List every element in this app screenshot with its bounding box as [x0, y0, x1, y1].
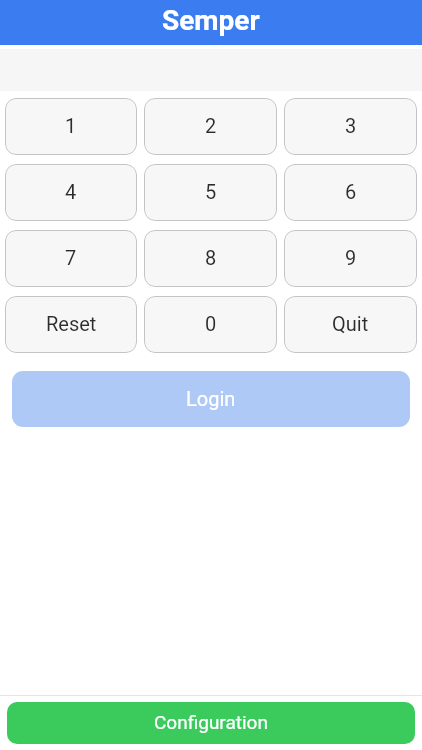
- button[interactable]: 1: [5, 98, 137, 155]
- button[interactable]: 7: [5, 230, 137, 287]
- button[interactable]: 9: [284, 230, 417, 287]
- staticText: 8: [205, 246, 217, 269]
- button[interactable]: 5: [144, 164, 277, 221]
- staticText: 3: [345, 114, 357, 137]
- button[interactable]: 4: [5, 164, 137, 221]
- staticText: 1: [65, 114, 77, 137]
- staticText: Login: [186, 387, 236, 410]
- staticText: 2: [205, 114, 217, 137]
- button[interactable]: 2: [144, 98, 277, 155]
- button[interactable]: Login: [12, 371, 410, 427]
- staticText: Reset: [46, 312, 97, 335]
- button[interactable]: 0: [144, 296, 277, 353]
- staticText: Semper: [162, 4, 260, 37]
- staticText: 7: [65, 246, 77, 269]
- staticText: 4: [65, 180, 77, 203]
- button[interactable]: Configuration: [7, 702, 415, 744]
- button[interactable]: Quit: [284, 296, 417, 353]
- staticText: 9: [345, 246, 357, 269]
- button[interactable]: 3: [284, 98, 417, 155]
- staticText: 5: [205, 180, 217, 203]
- button[interactable]: Reset: [5, 296, 137, 353]
- button[interactable]: 8: [144, 230, 277, 287]
- button[interactable]: 6: [284, 164, 417, 221]
- staticText: 0: [205, 312, 217, 335]
- staticText: Configuration: [154, 711, 268, 733]
- staticText: 6: [345, 180, 357, 203]
- staticText: Quit: [332, 312, 369, 335]
